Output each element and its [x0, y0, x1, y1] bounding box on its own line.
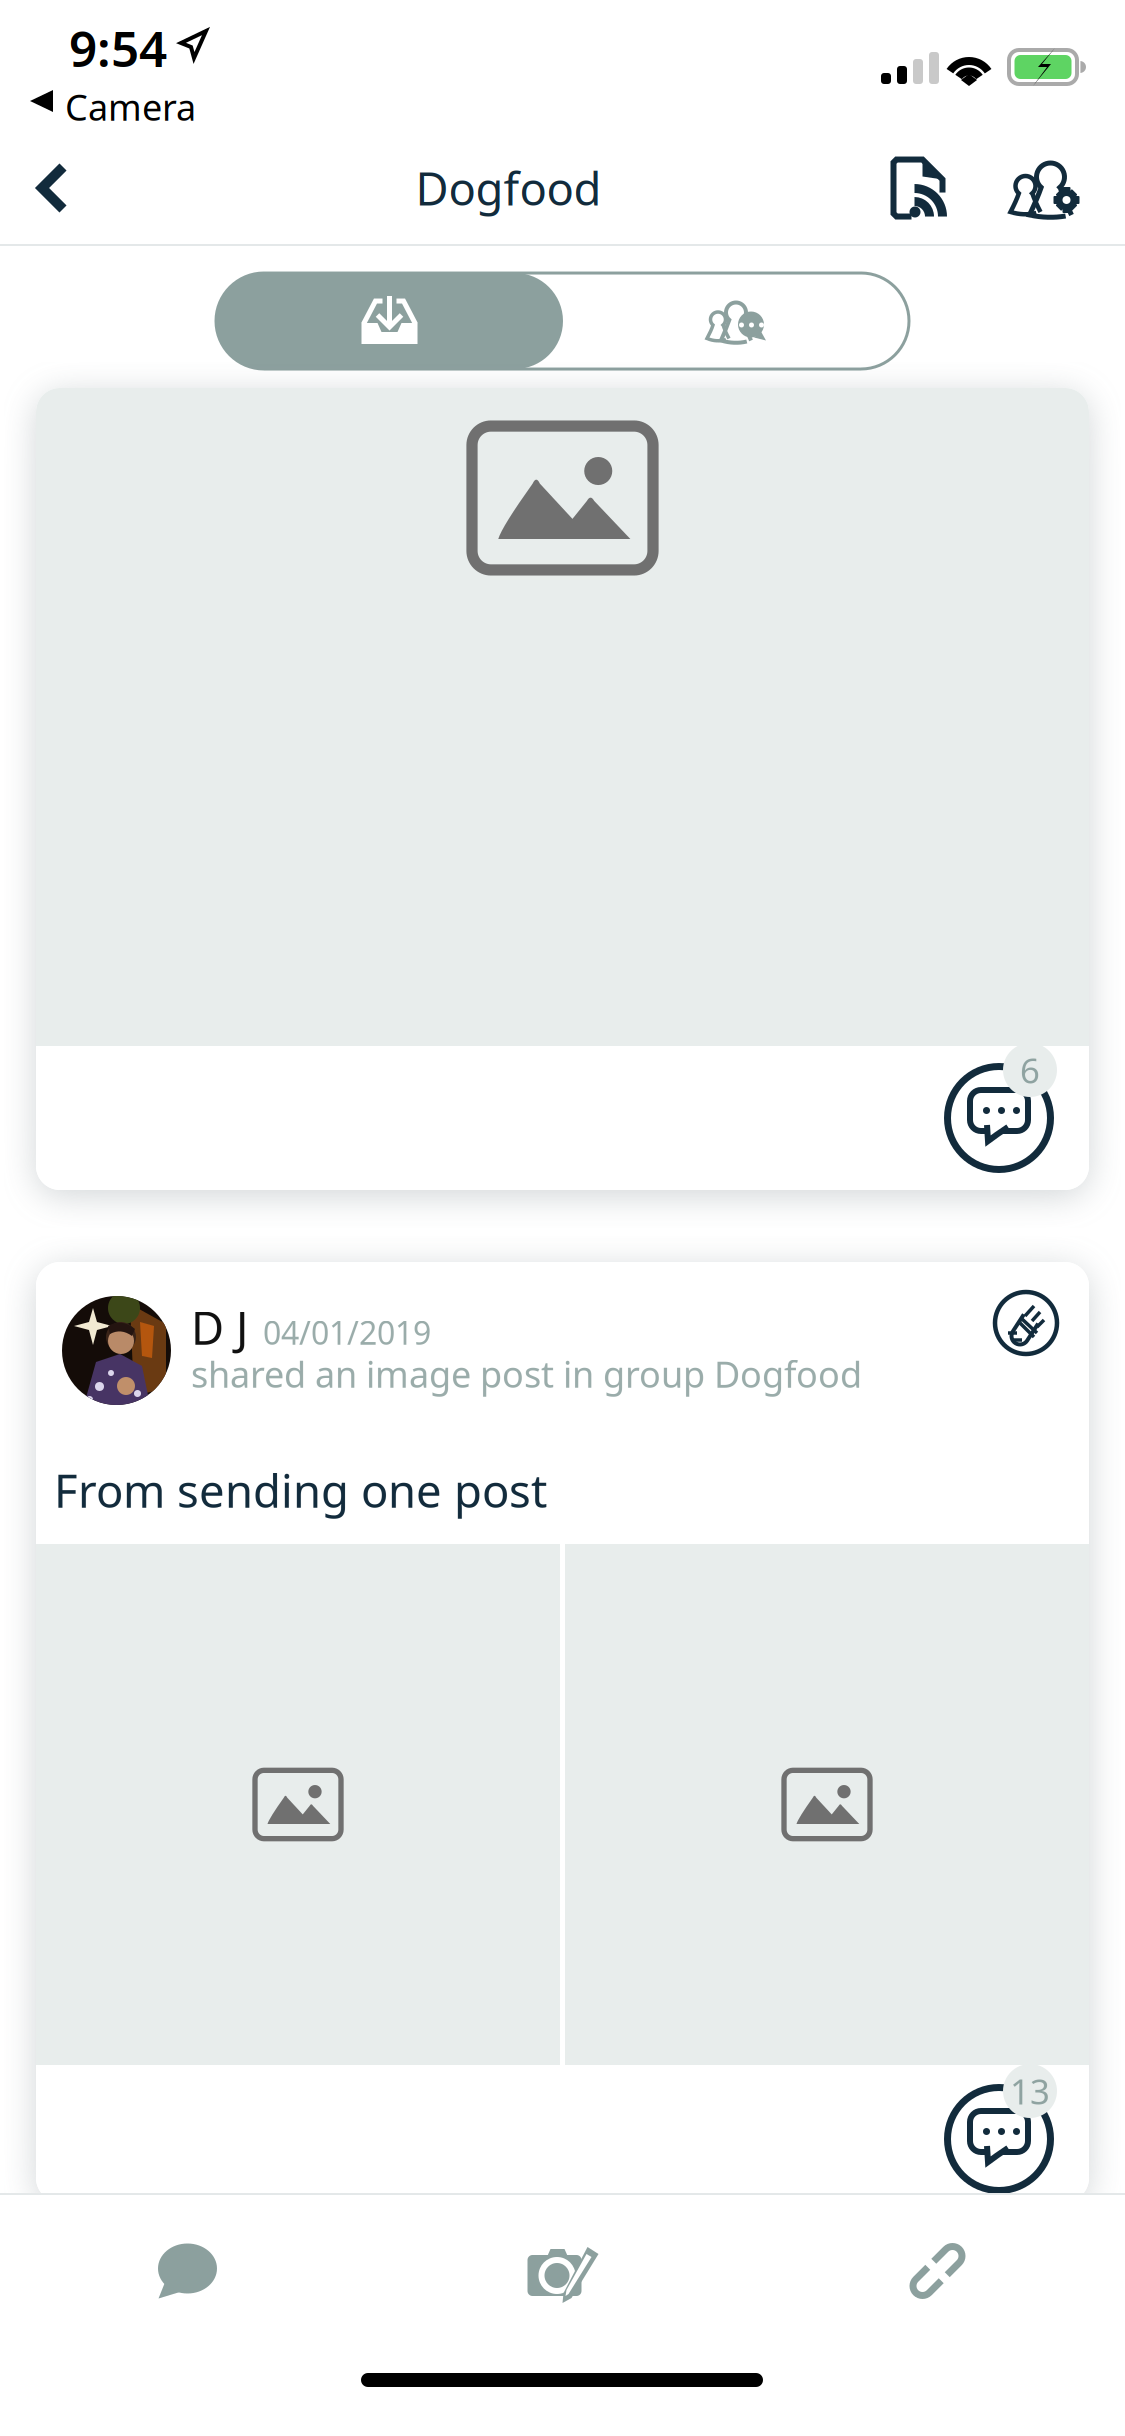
staticText: 6	[1020, 1047, 1040, 1093]
button[interactable]: Links	[750, 2195, 1125, 2347]
staticText: 04/01/2019	[263, 1311, 431, 1353]
staticText: From sending one post	[54, 1460, 547, 1520]
staticText: 13	[1010, 2068, 1050, 2114]
staticText: Camera	[65, 83, 196, 131]
button[interactable]: 13 comments	[944, 2057, 1072, 2194]
button[interactable]: Inbox	[216, 273, 563, 369]
staticText: D J	[191, 1297, 248, 1357]
button[interactable]: Back	[0, 132, 106, 244]
button[interactable]: New post	[377, 2199, 752, 2351]
button[interactable]: Messages	[0, 2195, 375, 2347]
button[interactable]: Unplug post	[995, 1292, 1057, 1354]
staticText: Dogfood	[415, 158, 601, 218]
button[interactable]: 6 comments	[944, 1036, 1072, 1173]
staticText: shared an image post in group Dogfood	[191, 1350, 862, 1398]
button[interactable]: Posts feed	[863, 132, 973, 244]
staticText: 9:54	[69, 15, 167, 80]
button[interactable]: Conversations	[563, 273, 909, 369]
button[interactable]: Group settings	[983, 132, 1105, 244]
